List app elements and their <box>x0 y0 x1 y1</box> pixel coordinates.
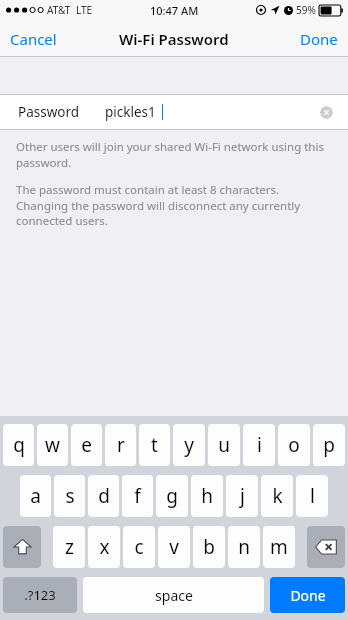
staticText: Password <box>18 103 80 121</box>
button[interactable]: d <box>88 475 119 517</box>
staticText: LTE <box>76 3 93 17</box>
button[interactable]: y <box>173 424 205 466</box>
button[interactable]: o <box>278 424 310 466</box>
button[interactable]: Done <box>290 20 348 57</box>
button[interactable]: p <box>313 424 345 466</box>
button[interactable]: Done <box>270 577 345 613</box>
staticText: 10:47 AM <box>150 3 199 18</box>
staticText: h <box>201 483 213 509</box>
staticText: pickles1 <box>105 103 156 121</box>
staticText: j <box>240 483 245 509</box>
staticText: u <box>218 432 230 458</box>
staticText: d <box>98 483 110 509</box>
button[interactable]: v <box>158 526 190 568</box>
staticText: Cancel <box>10 29 57 49</box>
staticText: y <box>184 432 194 458</box>
staticText: Other users will join your shared Wi-Fi … <box>16 139 332 170</box>
staticText: .?123 <box>24 586 56 604</box>
button[interactable]: n <box>228 526 260 568</box>
button[interactable]: r <box>105 424 136 466</box>
button[interactable]: k <box>261 475 293 517</box>
staticText: x <box>99 534 110 560</box>
staticText: g <box>166 483 178 509</box>
staticText: o <box>288 432 300 458</box>
button[interactable]: u <box>208 424 240 466</box>
button[interactable]: g <box>156 475 188 517</box>
button[interactable]: e <box>71 424 102 466</box>
button[interactable]: x <box>88 526 120 568</box>
button[interactable]: Cancel <box>0 20 67 57</box>
button[interactable]: Backspace <box>307 526 345 568</box>
staticText: The password must contain at least 8 cha… <box>16 182 332 228</box>
button[interactable]: i <box>243 424 275 466</box>
staticText: Done <box>290 586 326 605</box>
staticText: v <box>169 534 179 560</box>
staticText: AT&T <box>47 3 71 17</box>
staticText: p <box>323 432 335 458</box>
button[interactable]: h <box>191 475 223 517</box>
staticText: e <box>81 432 92 458</box>
staticText: space <box>155 586 193 605</box>
staticText: a <box>30 483 41 509</box>
staticText: s <box>65 483 75 509</box>
button[interactable]: w <box>37 424 68 466</box>
staticText: r <box>117 432 125 458</box>
staticText: q <box>13 432 25 458</box>
button[interactable]: s <box>54 475 85 517</box>
button[interactable]: m <box>263 526 295 568</box>
staticText: Wi-Fi Password <box>119 29 229 49</box>
button[interactable]: q <box>3 424 34 466</box>
staticText: b <box>203 534 215 560</box>
staticText: c <box>134 534 144 560</box>
staticText: 59% <box>296 3 316 17</box>
button[interactable]: l <box>296 475 328 517</box>
staticText: k <box>272 483 283 509</box>
staticText: n <box>238 534 250 560</box>
button[interactable]: b <box>193 526 225 568</box>
staticText: i <box>257 432 262 458</box>
button[interactable]: t <box>139 424 170 466</box>
button[interactable]: Shift <box>3 526 41 568</box>
staticText: Done <box>300 29 338 49</box>
button[interactable]: z <box>53 526 85 568</box>
button[interactable]: space <box>83 577 264 613</box>
button[interactable]: Clear text <box>320 106 333 119</box>
staticText: l <box>310 483 315 509</box>
button[interactable]: .?123 <box>3 577 77 613</box>
staticText: z <box>65 534 74 560</box>
staticText: f <box>134 483 141 509</box>
button[interactable]: Password <box>0 95 348 129</box>
button[interactable]: f <box>122 475 153 517</box>
staticText: m <box>270 534 288 560</box>
staticText: w <box>45 432 60 458</box>
staticText: t <box>151 432 158 458</box>
button[interactable]: j <box>226 475 258 517</box>
button[interactable]: c <box>123 526 155 568</box>
button[interactable]: a <box>20 475 51 517</box>
